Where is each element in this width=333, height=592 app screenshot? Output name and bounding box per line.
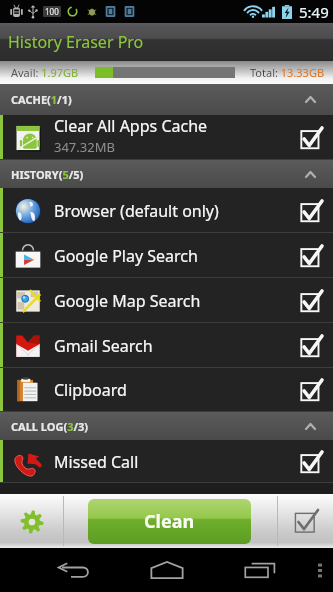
button[interactable]: Clipboard xyxy=(0,368,333,412)
staticText: Avail: 1.97GB xyxy=(11,65,79,80)
staticText: Clean xyxy=(144,509,195,534)
button[interactable]: CALL LOG(3/3) xyxy=(0,412,333,440)
button[interactable]: Google Map Search xyxy=(0,278,333,323)
button[interactable]: Recents xyxy=(229,548,291,592)
button[interactable]: Clear All Apps Cache xyxy=(0,115,333,160)
staticText: Browser (default only) xyxy=(54,200,219,222)
staticText: CACHE(1/1) xyxy=(11,92,72,107)
staticText: 347.32MB xyxy=(54,138,115,156)
button[interactable]: Missed Call xyxy=(0,440,333,483)
staticText: Clear All Apps Cache xyxy=(54,115,208,137)
staticText: Missed Call xyxy=(54,451,139,473)
staticText: Google Map Search xyxy=(54,290,201,312)
staticText: 100 xyxy=(45,6,59,17)
staticText: Total: 13.33GB xyxy=(250,65,325,80)
button[interactable]: Back xyxy=(42,548,104,592)
button[interactable]: More options xyxy=(307,548,333,592)
staticText: Google Play Search xyxy=(54,245,198,267)
button[interactable]: CACHE(1/1) xyxy=(0,84,333,115)
staticText: Clipboard xyxy=(54,379,127,401)
button[interactable]: Gmail Search xyxy=(0,323,333,368)
button[interactable]: Clean xyxy=(88,499,251,544)
button[interactable]: Settings xyxy=(0,494,63,548)
staticText: 5:49 xyxy=(299,2,329,22)
button[interactable]: Google Play Search xyxy=(0,233,333,278)
button[interactable]: Browser (default only) xyxy=(0,188,333,233)
staticText: CALL LOG(3/3) xyxy=(11,419,89,434)
button[interactable]: HISTORY(5/5) xyxy=(0,160,333,188)
button[interactable]: Home xyxy=(136,548,198,592)
staticText: History Eraser Pro xyxy=(8,31,144,53)
staticText: HISTORY(5/5) xyxy=(11,167,84,182)
staticText: Gmail Search xyxy=(54,335,153,357)
button[interactable]: Select all xyxy=(278,494,333,548)
